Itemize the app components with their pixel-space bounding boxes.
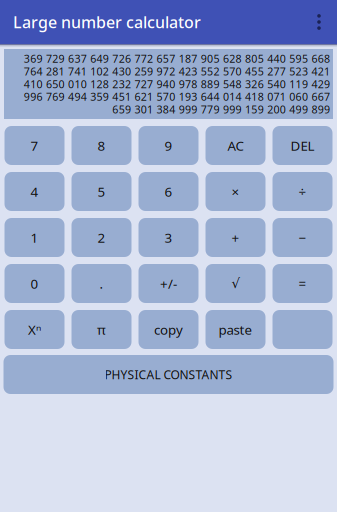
button[interactable]: DEL [272, 126, 332, 165]
staticText: 764 281 741 102 430 259 972 423 552 570 … [24, 64, 330, 78]
button[interactable]: 2 [71, 218, 131, 257]
staticText: 3 [164, 229, 172, 246]
button[interactable]: AC [205, 126, 265, 165]
staticText: 369 729 637 649 726 772 657 187 905 628 … [24, 52, 330, 66]
staticText: − [298, 229, 306, 246]
staticText: √ [231, 276, 239, 291]
staticText: 659 301 384 999 779 999 159 200 499 899 [112, 102, 330, 116]
button[interactable]: More options [301, 0, 337, 44]
staticText: = [298, 275, 306, 292]
button[interactable]: PHYSICAL CONSTANTS [3, 355, 333, 394]
button[interactable]: + [205, 218, 265, 257]
staticText: 1 [30, 229, 38, 246]
staticText: Xⁿ [28, 321, 41, 338]
button[interactable]: 8 [71, 126, 131, 165]
button[interactable]: 7 [4, 126, 64, 165]
button[interactable]: . [71, 264, 131, 303]
staticText: 0 [30, 275, 38, 292]
button[interactable]: 4 [4, 172, 64, 211]
staticText: PHYSICAL CONSTANTS [104, 366, 232, 382]
staticText: 7 [30, 137, 38, 154]
staticText: paste [218, 321, 252, 338]
staticText: 410 650 010 128 232 727 940 978 889 548 … [24, 77, 330, 91]
button[interactable]: = [272, 264, 332, 303]
staticText: 8 [97, 137, 105, 154]
staticText: 4 [30, 183, 38, 200]
button[interactable]: 9 [138, 126, 198, 165]
button[interactable]: 1 [4, 218, 64, 257]
button[interactable]: 3 [138, 218, 198, 257]
staticText: ÷ [298, 183, 306, 200]
staticText: 9 [164, 137, 172, 154]
button[interactable]: +/- [138, 264, 198, 303]
button[interactable]: − [272, 218, 332, 257]
button[interactable]: π [71, 310, 131, 349]
button[interactable]: 0 [4, 264, 64, 303]
staticText: AC [227, 137, 243, 154]
button[interactable]: paste [205, 310, 265, 349]
button[interactable]: √ [205, 264, 265, 303]
button[interactable]: 5 [71, 172, 131, 211]
staticText: × [231, 183, 239, 200]
button[interactable]: × [205, 172, 265, 211]
button[interactable]: copy [138, 310, 198, 349]
staticText: 2 [97, 229, 105, 246]
staticText: . [99, 275, 103, 292]
staticText: 5 [97, 183, 105, 200]
staticText: copy [154, 321, 183, 338]
staticText: DEL [290, 137, 314, 154]
staticText: 6 [164, 183, 172, 200]
button[interactable] [272, 310, 332, 349]
staticText: 996 769 494 359 451 621 570 193 644 014 … [24, 90, 330, 104]
staticText: +/- [160, 275, 177, 292]
staticText: + [231, 229, 239, 246]
button[interactable]: 6 [138, 172, 198, 211]
button[interactable]: Xⁿ [4, 310, 64, 349]
staticText: Large number calculator [13, 11, 201, 33]
staticText: π [97, 321, 106, 338]
button[interactable]: ÷ [272, 172, 332, 211]
